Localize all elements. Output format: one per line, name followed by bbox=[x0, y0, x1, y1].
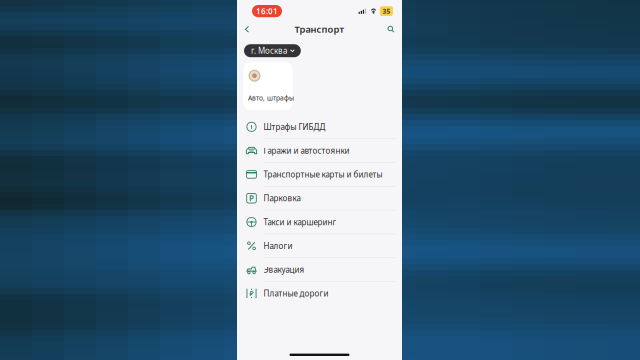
staticText: Налоги bbox=[263, 240, 292, 251]
button[interactable]: Гаражи и автостоянки bbox=[237, 139, 402, 163]
staticText: Гаражи и автостоянки bbox=[263, 145, 349, 156]
staticText: Транспортные карты и билеты bbox=[263, 169, 382, 180]
staticText: Платные дороги bbox=[263, 288, 328, 299]
button[interactable]: ₽ bbox=[237, 282, 402, 305]
button[interactable]: Штрафы ГИБДД bbox=[237, 115, 402, 139]
staticText: Транспорт bbox=[294, 23, 344, 35]
button[interactable]: Транспортные карты и билеты bbox=[237, 163, 402, 187]
button[interactable]: Авто, штрафы bbox=[243, 62, 293, 110]
button[interactable]: Эвакуация bbox=[237, 258, 402, 282]
button[interactable]: Такси и каршеринг bbox=[237, 210, 402, 234]
staticText: г. Москва bbox=[251, 45, 287, 56]
staticText: ₽ bbox=[249, 289, 253, 298]
button[interactable]: P bbox=[237, 187, 402, 210]
button[interactable]: Поиск bbox=[382, 21, 400, 37]
staticText: P bbox=[249, 193, 254, 203]
button[interactable]: Налоги bbox=[237, 234, 402, 258]
staticText: Авто, штрафы bbox=[248, 93, 294, 102]
staticText: Эвакуация bbox=[263, 264, 304, 275]
staticText: 35 bbox=[382, 7, 390, 16]
staticText: Такси и каршеринг bbox=[263, 217, 336, 227]
button[interactable]: г. Москва bbox=[244, 44, 301, 57]
button[interactable]: Назад bbox=[238, 21, 256, 37]
staticText: 16:01 bbox=[256, 6, 278, 16]
staticText: Парковка bbox=[263, 193, 300, 203]
staticText: Штрафы ГИБДД bbox=[263, 121, 325, 132]
